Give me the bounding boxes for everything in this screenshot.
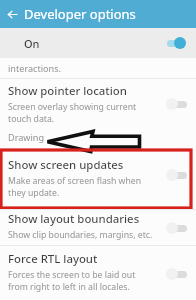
staticText: Show layout boundaries (8, 211, 140, 227)
staticText: interactions. (8, 62, 61, 74)
button[interactable]: Developer options on (166, 37, 190, 49)
button[interactable]: On (0, 28, 196, 58)
staticText: they update. (8, 187, 60, 199)
staticText: from right to left in all locales. (8, 281, 130, 293)
staticText: Force RTL layout (8, 251, 98, 267)
button[interactable]: Toggle (166, 268, 190, 280)
staticText: Show screen updates (8, 157, 124, 173)
staticText: Show clip boundaries, margins, etc. (8, 229, 153, 241)
staticText: Show pointer location (8, 83, 127, 99)
button[interactable]: Toggle (166, 98, 190, 110)
staticText: touch data. (8, 113, 55, 125)
button[interactable]: Toggle (166, 222, 190, 234)
staticText: Drawing (8, 131, 45, 143)
staticText: Forces the screen to be laid out (8, 269, 136, 281)
staticText: Developer options (24, 5, 136, 23)
staticText: On (24, 36, 40, 51)
staticText: Make areas of screen flash when (8, 175, 142, 187)
button[interactable]: Back (0, 0, 24, 28)
button[interactable]: Toggle (166, 169, 190, 181)
staticText: Screen overlay showing current (8, 101, 137, 113)
